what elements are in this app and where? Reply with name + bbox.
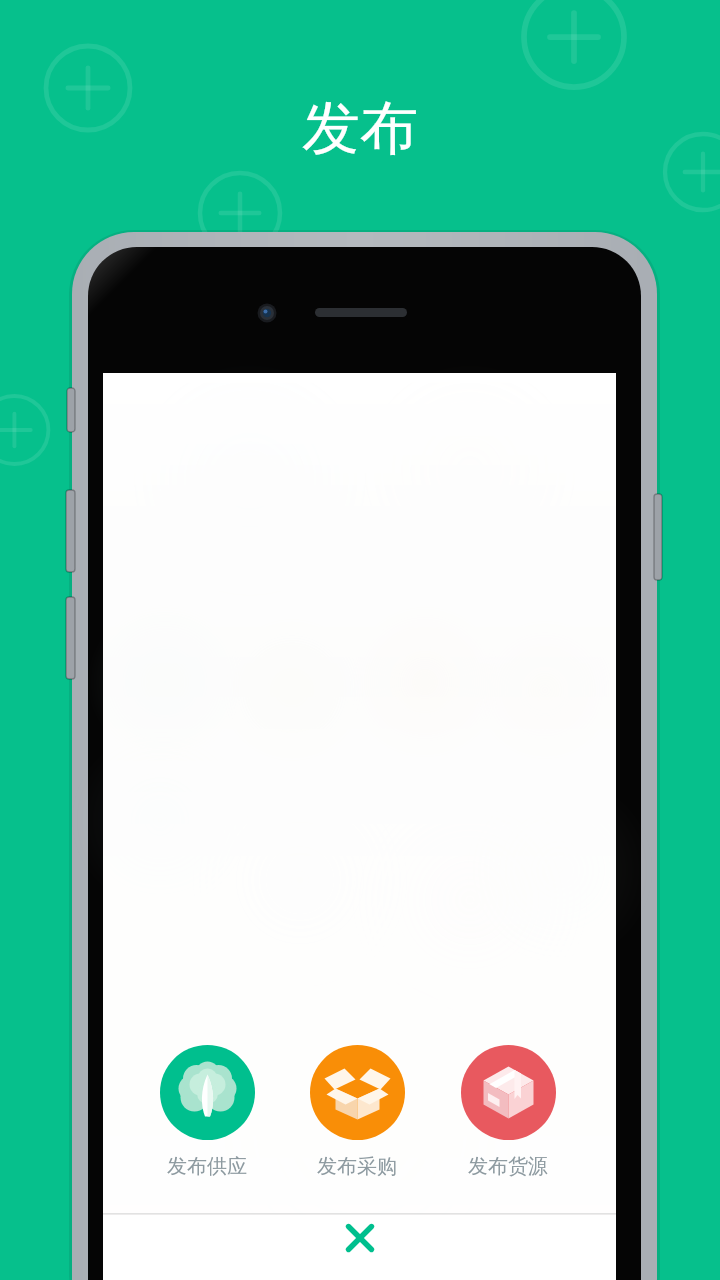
- staticText: 发布货源: [468, 1154, 548, 1179]
- button[interactable]: 关闭: [103, 1216, 616, 1280]
- staticText: 发布: [0, 92, 720, 165]
- button[interactable]: 发布供应: [147, 1035, 267, 1183]
- button[interactable]: 发布采购: [297, 1035, 417, 1183]
- button[interactable]: 发布货源: [448, 1035, 568, 1183]
- staticText: 发布采购: [317, 1154, 397, 1179]
- staticText: 发布供应: [167, 1154, 247, 1179]
